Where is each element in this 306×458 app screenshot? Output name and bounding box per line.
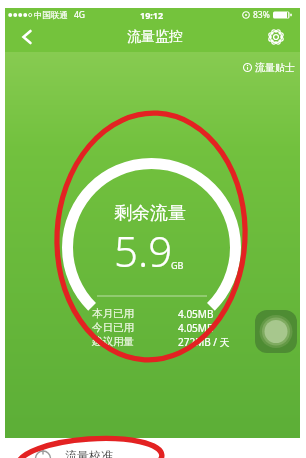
- staticText: 272MB / 天: [178, 335, 240, 349]
- staticText: 今日已用: [92, 321, 134, 334]
- staticText: 中国联通: [34, 10, 68, 21]
- staticText: 剩余流量: [114, 202, 186, 225]
- staticText: 5.9: [114, 222, 173, 279]
- staticText: 建议用量: [92, 335, 134, 348]
- button[interactable]: [255, 310, 297, 353]
- staticText: 19:12: [140, 9, 164, 21]
- button[interactable]: 流量贴士: [243, 61, 295, 74]
- staticText: 流量监控: [127, 28, 183, 46]
- button[interactable]: [261, 22, 291, 52]
- staticText: 4G: [74, 9, 86, 21]
- staticText: 4.05MB: [178, 321, 240, 335]
- staticText: 流量校准: [65, 448, 113, 458]
- button[interactable]: [5, 22, 49, 52]
- button[interactable]: 流量校准: [35, 445, 300, 458]
- staticText: 4.05MB: [178, 307, 240, 321]
- staticText: 本月已用: [92, 307, 134, 320]
- staticText: 流量贴士: [255, 61, 295, 74]
- staticText: 83%: [253, 9, 270, 21]
- staticText: GB: [171, 259, 184, 271]
